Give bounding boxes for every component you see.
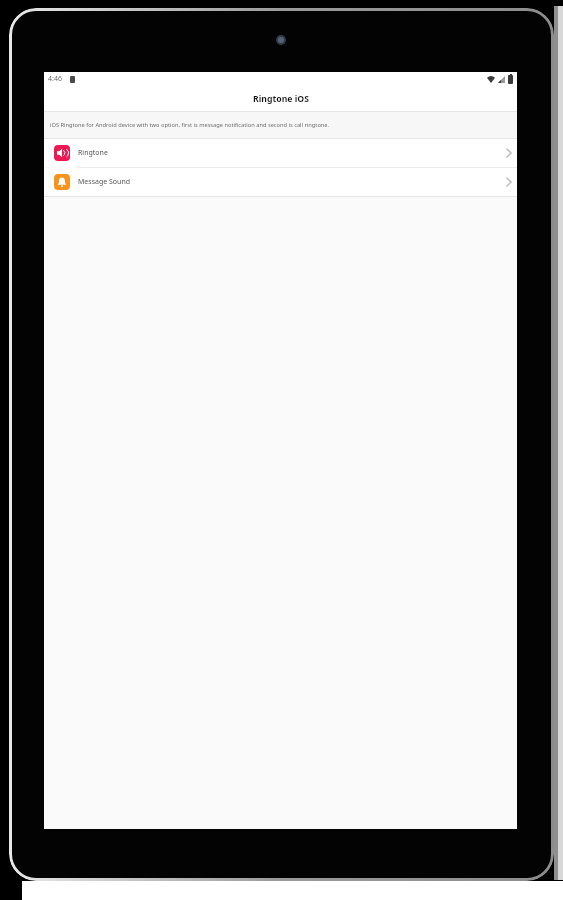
button[interactable]: Message Sound [44, 168, 517, 196]
button[interactable]: Ringtone [44, 139, 517, 167]
staticText: iOS Ringtone for Android device with two… [50, 121, 330, 129]
staticText: 4:46 [48, 74, 62, 84]
staticText: Ringtone [78, 148, 108, 158]
staticText: Ringtone iOS [253, 93, 309, 105]
staticText: Message Sound [78, 177, 131, 187]
